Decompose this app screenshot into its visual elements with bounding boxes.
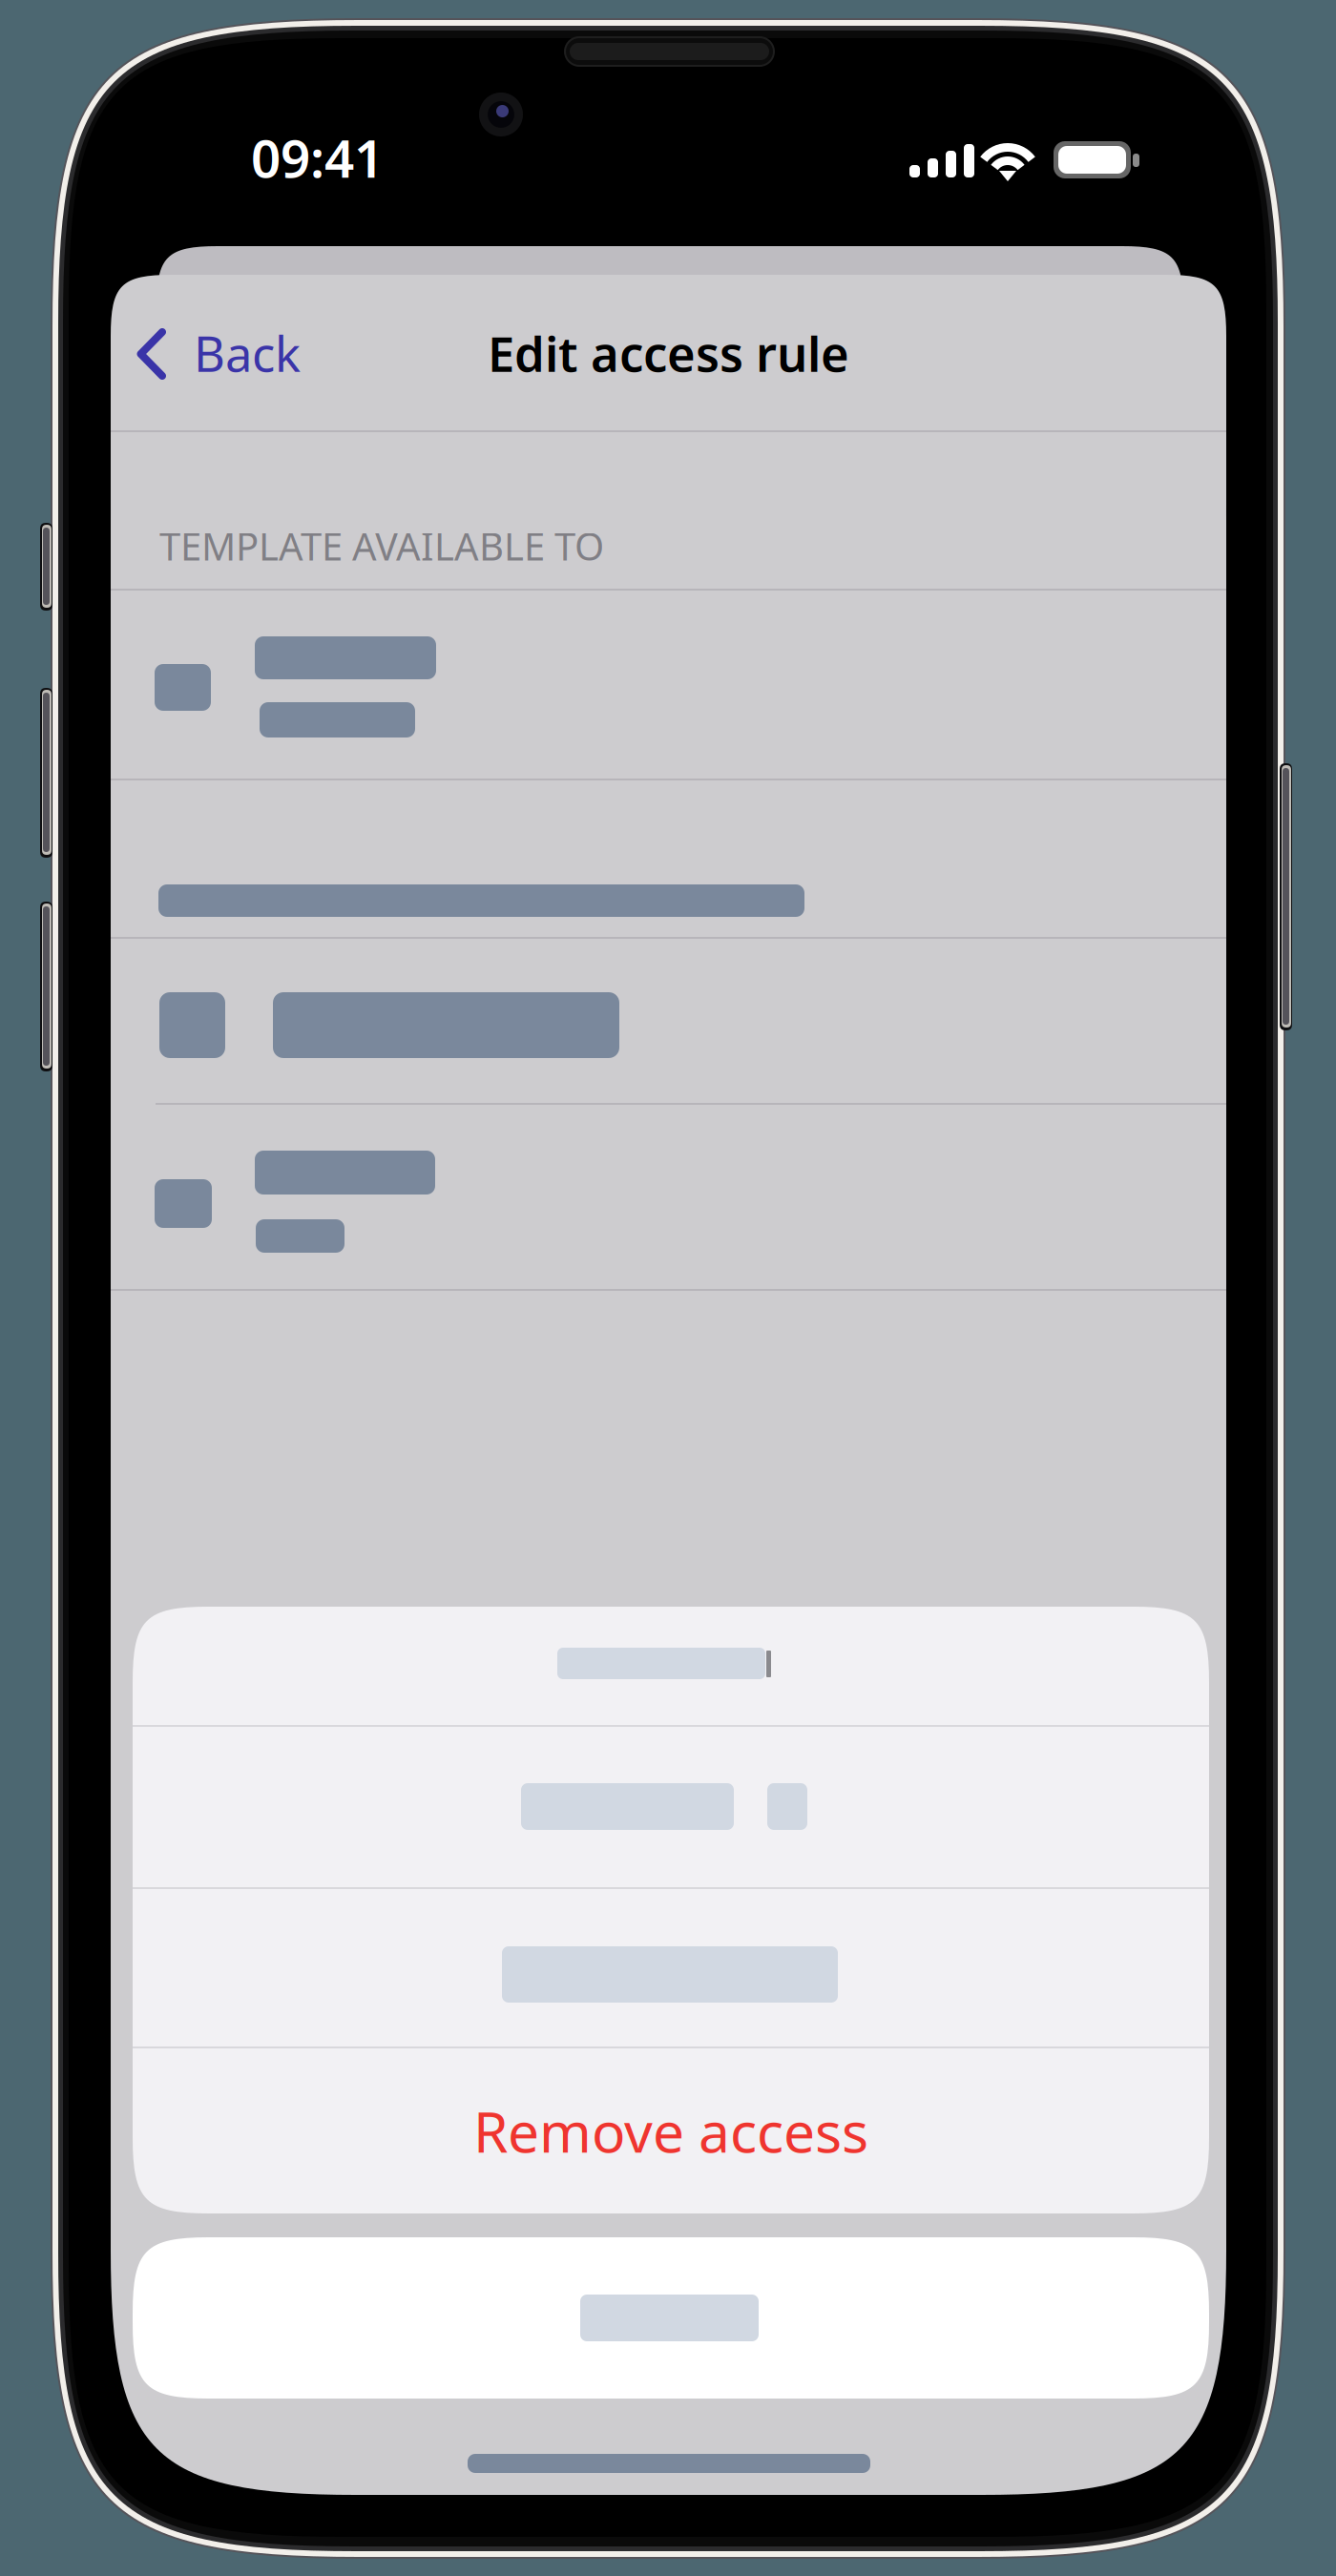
staticText: Remove access [473,2094,868,2168]
button[interactable]: Back [111,275,492,430]
button[interactable]: Rule name [133,1607,1209,1725]
staticText: TEMPLATE AVAILABLE TO [159,520,604,571]
button[interactable]: Cancel [133,2237,1209,2399]
staticText: Back [194,321,301,385]
button[interactable]: Expires [133,1727,1209,1887]
staticText: Edit access rule [488,321,849,385]
button[interactable]: Permissions [133,1889,1209,2046]
button[interactable]: Audience row 4 [111,1105,1226,1291]
button[interactable]: Audience row 1 [111,591,1226,780]
button[interactable]: Audience row 2 [111,780,1226,939]
button[interactable]: Remove access [133,2048,1209,2213]
staticText: 09:41 [251,123,384,192]
button[interactable]: Audience row 3 [111,939,1226,1105]
